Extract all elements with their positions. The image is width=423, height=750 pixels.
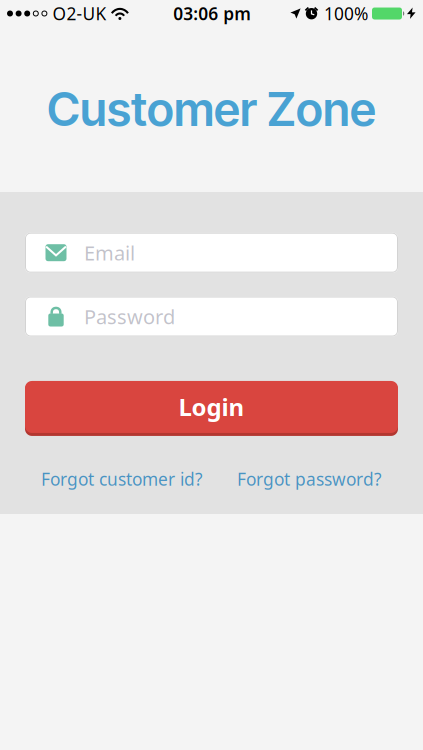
staticText: 03:06 pm (173, 2, 251, 25)
button[interactable]: Forgot password? (237, 467, 382, 490)
button[interactable]: Login (25, 381, 398, 434)
staticText: Password (84, 303, 175, 330)
staticText: Forgot customer id? (41, 467, 203, 490)
staticText: 100% (324, 2, 368, 25)
staticText: Email (84, 239, 135, 266)
button[interactable]: Forgot customer id? (41, 467, 203, 490)
button[interactable]: Password (25, 296, 398, 336)
staticText: Login (178, 391, 244, 423)
staticText: Customer Zone (47, 81, 376, 137)
staticText: O2-UK (52, 2, 106, 25)
button[interactable]: Email (25, 233, 398, 273)
staticText: Forgot password? (237, 467, 382, 490)
